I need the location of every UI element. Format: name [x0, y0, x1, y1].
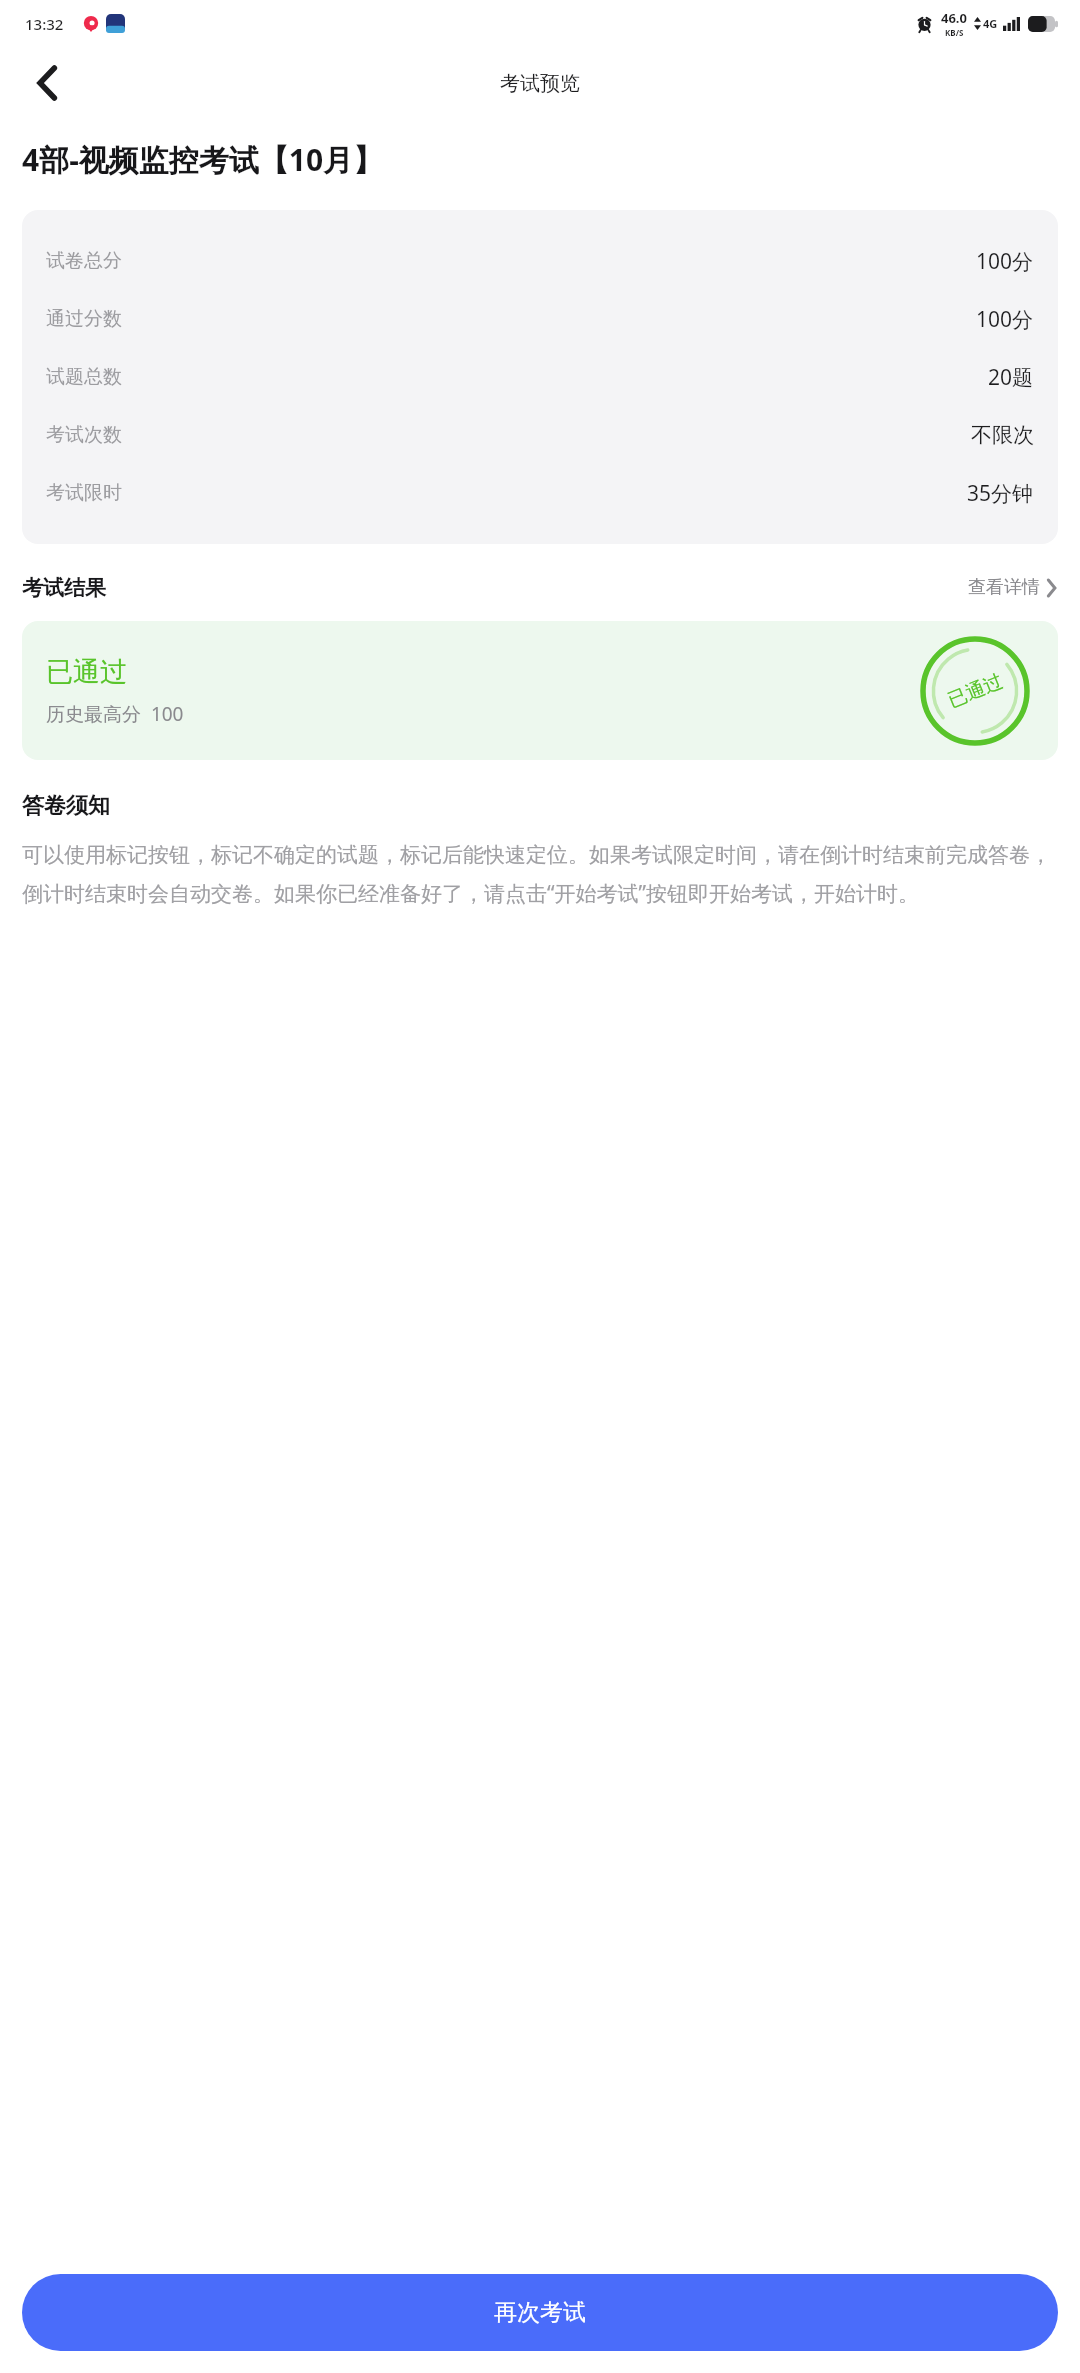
staticText: 不限次: [971, 422, 1034, 448]
staticText: 已通过: [945, 669, 1006, 713]
button[interactable]: Back: [22, 57, 74, 109]
staticText: 4G: [983, 16, 998, 31]
staticText: 4部-视频监控考试【10月】: [22, 139, 1058, 180]
staticText: 考试限时: [46, 481, 122, 505]
staticText: 考试次数: [46, 423, 122, 447]
staticText: 100分: [976, 247, 1034, 276]
staticText: 答卷须知: [22, 792, 110, 820]
staticText: 再次考试: [494, 2298, 586, 2327]
staticText: 试题总数: [46, 365, 122, 389]
staticText: 46.0: [941, 9, 967, 27]
button[interactable]: 查看详情: [966, 570, 1058, 605]
staticText: 查看详情: [968, 576, 1040, 599]
staticText: KB/S: [945, 27, 964, 38]
button[interactable]: 再次考试: [22, 2274, 1058, 2351]
staticText: 13:32: [25, 14, 64, 34]
staticText: 100分: [976, 305, 1034, 334]
staticText: 通过分数: [46, 307, 122, 331]
staticText: 历史最高分 100: [46, 701, 184, 727]
staticText: 试卷总分: [46, 249, 122, 273]
staticText: 已通过: [46, 655, 127, 689]
button[interactable]: 已通过: [22, 621, 1058, 760]
staticText: 考试结果: [22, 575, 106, 601]
staticText: 考试预览: [500, 71, 580, 96]
staticText: 35分钟: [967, 479, 1034, 508]
staticText: 20题: [988, 363, 1034, 392]
staticText: 可以使用标记按钮，标记不确定的试题，标记后能快速定位。如果考试限定时间，请在倒计…: [22, 842, 1058, 907]
